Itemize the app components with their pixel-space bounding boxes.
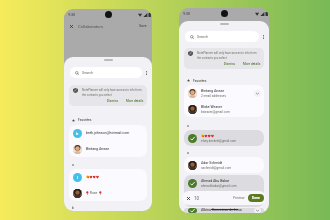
staticText: Done: [252, 196, 260, 200]
staticText: Blake Weaver: [201, 105, 223, 109]
button[interactable]: b: [69, 125, 147, 141]
staticText: a: [187, 151, 189, 155]
staticText: Ahmad Abu Bakar: [201, 179, 230, 183]
staticText: a: [187, 124, 189, 128]
staticText: Rose: [89, 191, 99, 195]
staticText: Preview: [233, 196, 245, 200]
staticText: Dismiss: [224, 62, 236, 66]
button[interactable]: Adar Schmidt: [184, 157, 264, 173]
button[interactable]: Search: [185, 31, 259, 42]
staticText: beth.johnson@hotmail.com: [86, 131, 130, 135]
button[interactable]: Dismiss: [222, 61, 238, 67]
button[interactable]: Dismiss: [105, 98, 121, 104]
staticText: Adar Schmidt: [201, 161, 223, 165]
staticText: b: [76, 131, 79, 136]
button[interactable]: Bintang Anwar: [69, 141, 147, 157]
staticText: NotePlanner will only have access to inf…: [197, 51, 261, 59]
staticText: Collaborators: [78, 24, 104, 29]
button[interactable]: Expand: [254, 90, 261, 97]
button[interactable]: Bintang Anwar: [184, 85, 264, 101]
staticText: Search: [82, 71, 94, 75]
staticText: Dismiss: [107, 99, 119, 103]
button[interactable]: Close: [68, 23, 75, 30]
staticText: NotePlanner will only have access to inf…: [82, 88, 144, 96]
button[interactable]: More details: [124, 98, 144, 104]
button[interactable]: Ahmad Abu Bakar: [184, 175, 264, 191]
button[interactable]: More details: [241, 61, 261, 67]
staticText: 10: [194, 196, 200, 201]
staticText: Albina Conceicao de Lima: [201, 208, 242, 212]
button[interactable]: Ahmad Abu Bakar: [184, 191, 264, 207]
staticText: Bintang Anwar: [86, 147, 109, 151]
button[interactable]: Rose: [69, 185, 147, 201]
staticText: Favorites: [193, 79, 207, 83]
button[interactable]: elsey.beckett@gmail.com: [184, 130, 264, 146]
staticText: 9:30: [183, 12, 191, 16]
button[interactable]: Blake Weaver: [184, 101, 264, 117]
staticText: Favorites: [78, 118, 92, 122]
staticText: Save: [139, 24, 147, 28]
staticText: Bintang Anwar: [201, 89, 224, 93]
staticText: ahmad.bakar@gmail.com: [201, 184, 237, 188]
staticText: More details: [243, 62, 261, 66]
staticText: 2 email addresses: [201, 94, 227, 98]
button[interactable]: l: [69, 169, 147, 185]
staticText: aschmidt@gmail.com: [201, 166, 232, 170]
staticText: a: [72, 163, 74, 167]
button[interactable]: Save: [138, 22, 148, 30]
button[interactable]: Clear selection: [185, 195, 192, 202]
staticText: b: [72, 206, 74, 210]
staticText: l: [77, 175, 79, 180]
button[interactable]: Search: [70, 67, 142, 78]
button[interactable]: Done: [248, 194, 264, 202]
staticText: More details: [126, 99, 144, 103]
staticText: bweaver@gmail.com: [201, 110, 230, 114]
button[interactable]: More options: [142, 69, 150, 77]
staticText: elsey.beckett@gmail.com: [201, 139, 237, 143]
button[interactable]: Expand: [254, 208, 261, 213]
button[interactable]: Albina Conceicao de Lima: [184, 208, 264, 213]
button[interactable]: More options: [259, 33, 267, 41]
staticText: Search: [197, 35, 209, 39]
staticText: 9:30: [68, 13, 76, 17]
button[interactable]: Preview: [231, 195, 247, 201]
